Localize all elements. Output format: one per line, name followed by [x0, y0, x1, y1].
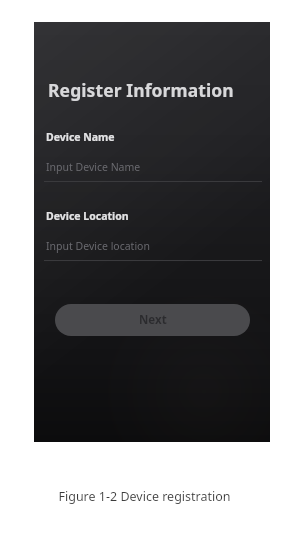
staticText: Device Name: [46, 130, 115, 144]
staticText: Device Location: [46, 209, 129, 223]
staticText: Register Information: [48, 78, 234, 102]
staticText: Input Device Name: [46, 160, 141, 174]
staticText: Figure 1-2 Device registration: [58, 488, 231, 505]
button[interactable]: Input Device Name: [34, 160, 270, 182]
button[interactable]: Input Device location: [34, 239, 270, 261]
staticText: Input Device location: [46, 239, 150, 253]
staticText: Next: [139, 312, 167, 328]
button[interactable]: Next: [55, 304, 250, 336]
